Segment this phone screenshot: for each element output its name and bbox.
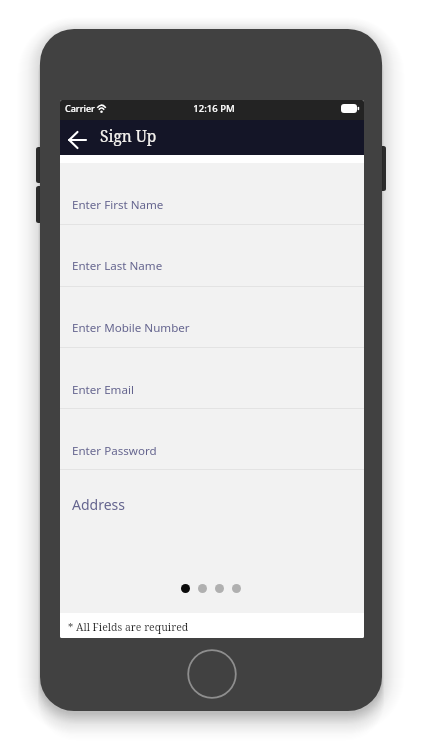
button[interactable]: Page 3 bbox=[215, 584, 224, 593]
button[interactable]: Enter First Name bbox=[60, 163, 364, 225]
staticText: * All Fields are required bbox=[68, 620, 189, 634]
staticText: 12:16 PM bbox=[193, 102, 235, 115]
button[interactable]: Enter Mobile Number bbox=[60, 287, 364, 348]
staticText: Sign Up bbox=[100, 125, 157, 146]
button[interactable]: Enter Email bbox=[60, 348, 364, 409]
button[interactable]: Page 1 bbox=[181, 584, 190, 593]
button[interactable]: Page 4 bbox=[232, 584, 241, 593]
other: Battery full bbox=[341, 104, 359, 113]
staticText: Enter Last Name bbox=[72, 258, 163, 274]
staticText: Enter Mobile Number bbox=[72, 320, 190, 336]
staticText: Carrier bbox=[65, 102, 95, 114]
staticText: Enter Password bbox=[72, 443, 157, 459]
staticText: Enter First Name bbox=[72, 197, 164, 213]
staticText: Address bbox=[72, 495, 125, 514]
staticText: Enter Email bbox=[72, 382, 134, 398]
button[interactable]: Page 2 bbox=[198, 584, 207, 593]
button[interactable]: Address bbox=[60, 470, 364, 531]
button[interactable]: Back bbox=[65, 128, 89, 152]
button[interactable]: Enter Password bbox=[60, 409, 364, 470]
button[interactable]: Enter Last Name bbox=[60, 225, 364, 287]
other: Wi-Fi bbox=[96, 103, 107, 113]
